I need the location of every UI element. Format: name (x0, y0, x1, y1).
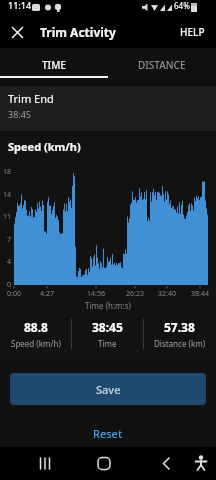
staticText: Trim End (8, 91, 54, 106)
staticText: HELP (180, 25, 205, 39)
button[interactable] (162, 447, 216, 480)
button[interactable] (0, 447, 54, 480)
staticText: 88.8 (24, 319, 48, 335)
staticText: 0:00 (0, 289, 29, 299)
staticText: 26:23 (120, 289, 150, 299)
staticText: 14 (0, 190, 11, 200)
staticText: 64% (174, 0, 190, 11)
staticText: 18 (0, 167, 11, 177)
button[interactable]: Reset (73, 422, 143, 444)
staticText: Speed (km/h) (11, 338, 61, 349)
staticText: Reset (93, 426, 123, 441)
staticText: 38:45 (8, 108, 32, 120)
staticText: DISTANCE (138, 58, 186, 72)
button[interactable]: DISTANCE (108, 48, 216, 82)
button[interactable] (108, 447, 162, 480)
staticText: TIME (42, 58, 66, 72)
button[interactable]: Save (10, 373, 206, 405)
staticText: 32:40 (152, 289, 182, 299)
staticText: Save (96, 382, 121, 397)
staticText: 11:14 (8, 0, 32, 11)
staticText: Distance (km) (154, 338, 206, 349)
staticText: 0 (0, 280, 11, 290)
button[interactable] (54, 447, 108, 480)
staticText: Trim Activity (40, 24, 116, 40)
staticText: 11 (0, 212, 11, 222)
button[interactable]: HELP (172, 19, 212, 44)
staticText: 4 (0, 257, 11, 267)
staticText: 7 (0, 235, 11, 245)
staticText: Time (98, 338, 117, 349)
staticText: 4:27 (32, 289, 62, 299)
button[interactable] (6, 21, 28, 43)
staticText: 38:45 (92, 319, 123, 335)
staticText: 57.38 (164, 319, 195, 335)
button[interactable]: TIME (0, 48, 108, 82)
staticText: 14:56 (81, 289, 111, 299)
staticText: 38:44 (185, 289, 215, 299)
staticText: Time (h:m:s) (0, 300, 216, 311)
staticText: Speed (km/h) (8, 139, 81, 154)
